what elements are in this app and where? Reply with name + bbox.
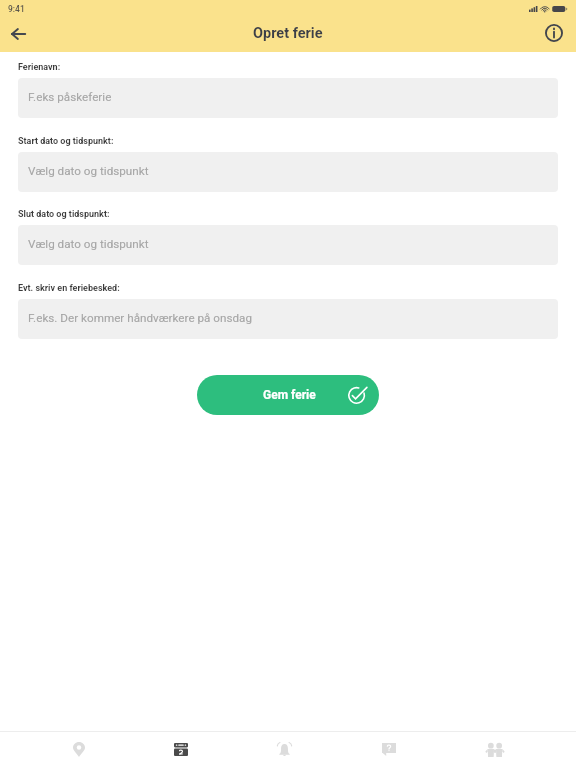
button[interactable]: Vælg dato og tidspunkt (18, 225, 558, 265)
staticText: Ferienavn: (18, 62, 61, 73)
staticText: Slut dato og tidspunkt: (18, 209, 110, 220)
staticText: 9:41 (8, 4, 25, 14)
button[interactable]: Gem ferie (197, 375, 379, 415)
staticText: Vælg dato og tidspunkt (28, 164, 149, 178)
staticText: Start dato og tidspunkt: (18, 136, 114, 147)
button[interactable]: Vælg dato og tidspunkt (18, 152, 558, 192)
button[interactable]: Calendar (115, 731, 230, 768)
staticText: Evt. skriv en feriebesked: (18, 283, 120, 294)
staticText: F.eks. Der kommer håndværkere på onsdag (28, 311, 252, 325)
button[interactable]: Info (535, 14, 572, 52)
button[interactable]: People (461, 731, 576, 768)
button[interactable]: F.eks. Der kommer håndværkere på onsdag (18, 299, 558, 339)
staticText: F.eks påskeferie (28, 90, 112, 104)
button[interactable]: Locations (0, 731, 115, 768)
button[interactable]: Back (0, 15, 37, 53)
button[interactable]: F.eks påskeferie (18, 78, 558, 118)
staticText: Vælg dato og tidspunkt (28, 237, 149, 251)
staticText: Opret ferie (253, 25, 323, 42)
staticText: Gem ferie (263, 388, 316, 402)
button[interactable]: Messages (346, 731, 461, 768)
button[interactable]: Alarms (230, 731, 345, 768)
